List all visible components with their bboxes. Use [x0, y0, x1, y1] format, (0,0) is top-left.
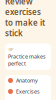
button[interactable]: Anatomy	[5, 75, 51, 86]
staticText: to make it stick	[5, 17, 45, 38]
staticText: Exercises	[16, 88, 40, 95]
button[interactable]: Exercises	[5, 86, 51, 97]
staticText: TIP	[8, 46, 13, 52]
staticText: Review exercises	[5, 0, 41, 17]
staticText: Practice makes perfect	[8, 53, 46, 67]
staticText: Anatomy	[16, 77, 38, 84]
